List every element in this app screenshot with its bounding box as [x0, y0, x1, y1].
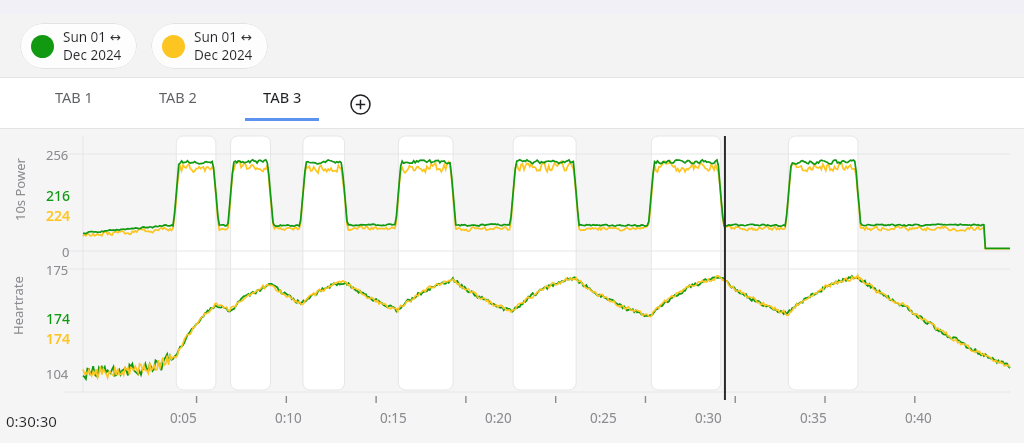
button[interactable]: Add tab: [340, 84, 380, 124]
staticText: 0:20: [485, 409, 512, 427]
button[interactable]: TAB 3: [230, 78, 334, 129]
button[interactable]: Sun 01 ↔: [20, 23, 137, 69]
staticText: 0:30:30: [6, 411, 57, 431]
staticText: 224: [46, 206, 71, 225]
staticText: 0:05: [170, 409, 197, 427]
button[interactable]: Sun 01 ↔: [151, 23, 268, 69]
staticText: 0:10: [275, 409, 302, 427]
staticText: 256: [46, 146, 69, 164]
staticText: Dec 2024: [194, 46, 253, 64]
button[interactable]: TAB 1: [22, 78, 126, 129]
staticText: Sun 01 ↔: [63, 28, 121, 46]
staticText: Heartrate: [9, 276, 27, 335]
staticText: 0:25: [590, 409, 617, 427]
staticText: 175: [46, 261, 69, 279]
staticText: TAB 1: [55, 87, 93, 107]
staticText: 0:40: [905, 409, 932, 427]
staticText: TAB 3: [263, 87, 302, 107]
staticText: 0:35: [800, 409, 827, 427]
staticText: 174: [46, 309, 71, 328]
staticText: 0:15: [380, 409, 407, 427]
staticText: TAB 2: [159, 87, 197, 107]
staticText: 10s Power: [11, 158, 29, 221]
staticText: Dec 2024: [63, 46, 122, 64]
staticText: 174: [46, 329, 71, 348]
button[interactable]: TAB 2: [126, 78, 230, 129]
staticText: 104: [46, 365, 69, 383]
staticText: Sun 01 ↔: [194, 28, 252, 46]
staticText: 0: [62, 243, 70, 261]
staticText: 216: [46, 186, 71, 205]
staticText: 0:30: [695, 409, 722, 427]
